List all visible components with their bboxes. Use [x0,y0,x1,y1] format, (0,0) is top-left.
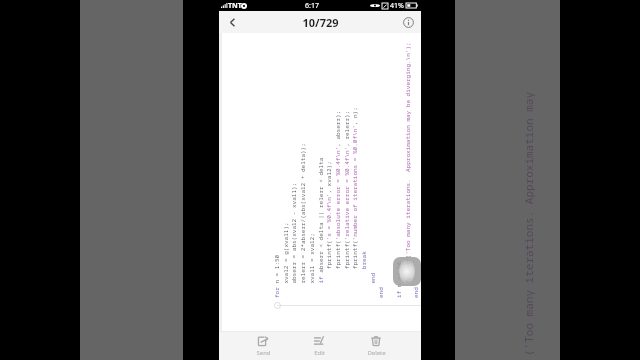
staticText: for n = 1:50 [273,0,281,298]
staticText: if abserr < delta || relerr < delta [317,0,325,298]
staticText: fprintf('relative error = %0.4f\n', rele… [343,0,351,298]
staticText: fprintf('Too many iterations. Approximat… [404,0,412,298]
staticText: Delete [367,349,386,357]
staticText: fprintf('number of iterations = %0.0f\n'… [351,0,359,298]
staticText: relerr = 2*abserr/(abs(xval2 + delta)); [299,0,307,298]
button[interactable]: Back [219,11,245,33]
button[interactable]: Play [393,257,421,286]
staticText: end [412,0,420,298]
staticText: 41% [390,1,404,11]
staticText: break [360,0,368,298]
staticText: fprintf('absolute error = %0.4f\n', abse… [334,0,342,298]
staticText: 6:17 [305,1,319,11]
staticText: 10/729 [302,15,339,30]
staticText: TNT [228,1,242,11]
staticText: abserr = abs(xval2 - xval1); [290,0,298,298]
staticText: Edit [314,349,325,357]
staticText: end [369,0,377,298]
staticText: end [377,0,385,298]
button[interactable]: Send [235,334,291,358]
staticText: xval2 = g(xval1); [282,0,290,298]
staticText: fprintf('x = %0.4f\n', xval2); [325,0,333,298]
staticText: if n >= 50 [395,0,403,298]
staticText: ('Too many iterations. Approximation may [521,92,535,356]
button[interactable]: Edit [291,334,347,358]
button[interactable]: Info [395,11,421,33]
staticText: Send [256,349,271,357]
staticText: xval1 = xval2; [308,0,316,298]
button[interactable]: Delete [348,334,404,358]
